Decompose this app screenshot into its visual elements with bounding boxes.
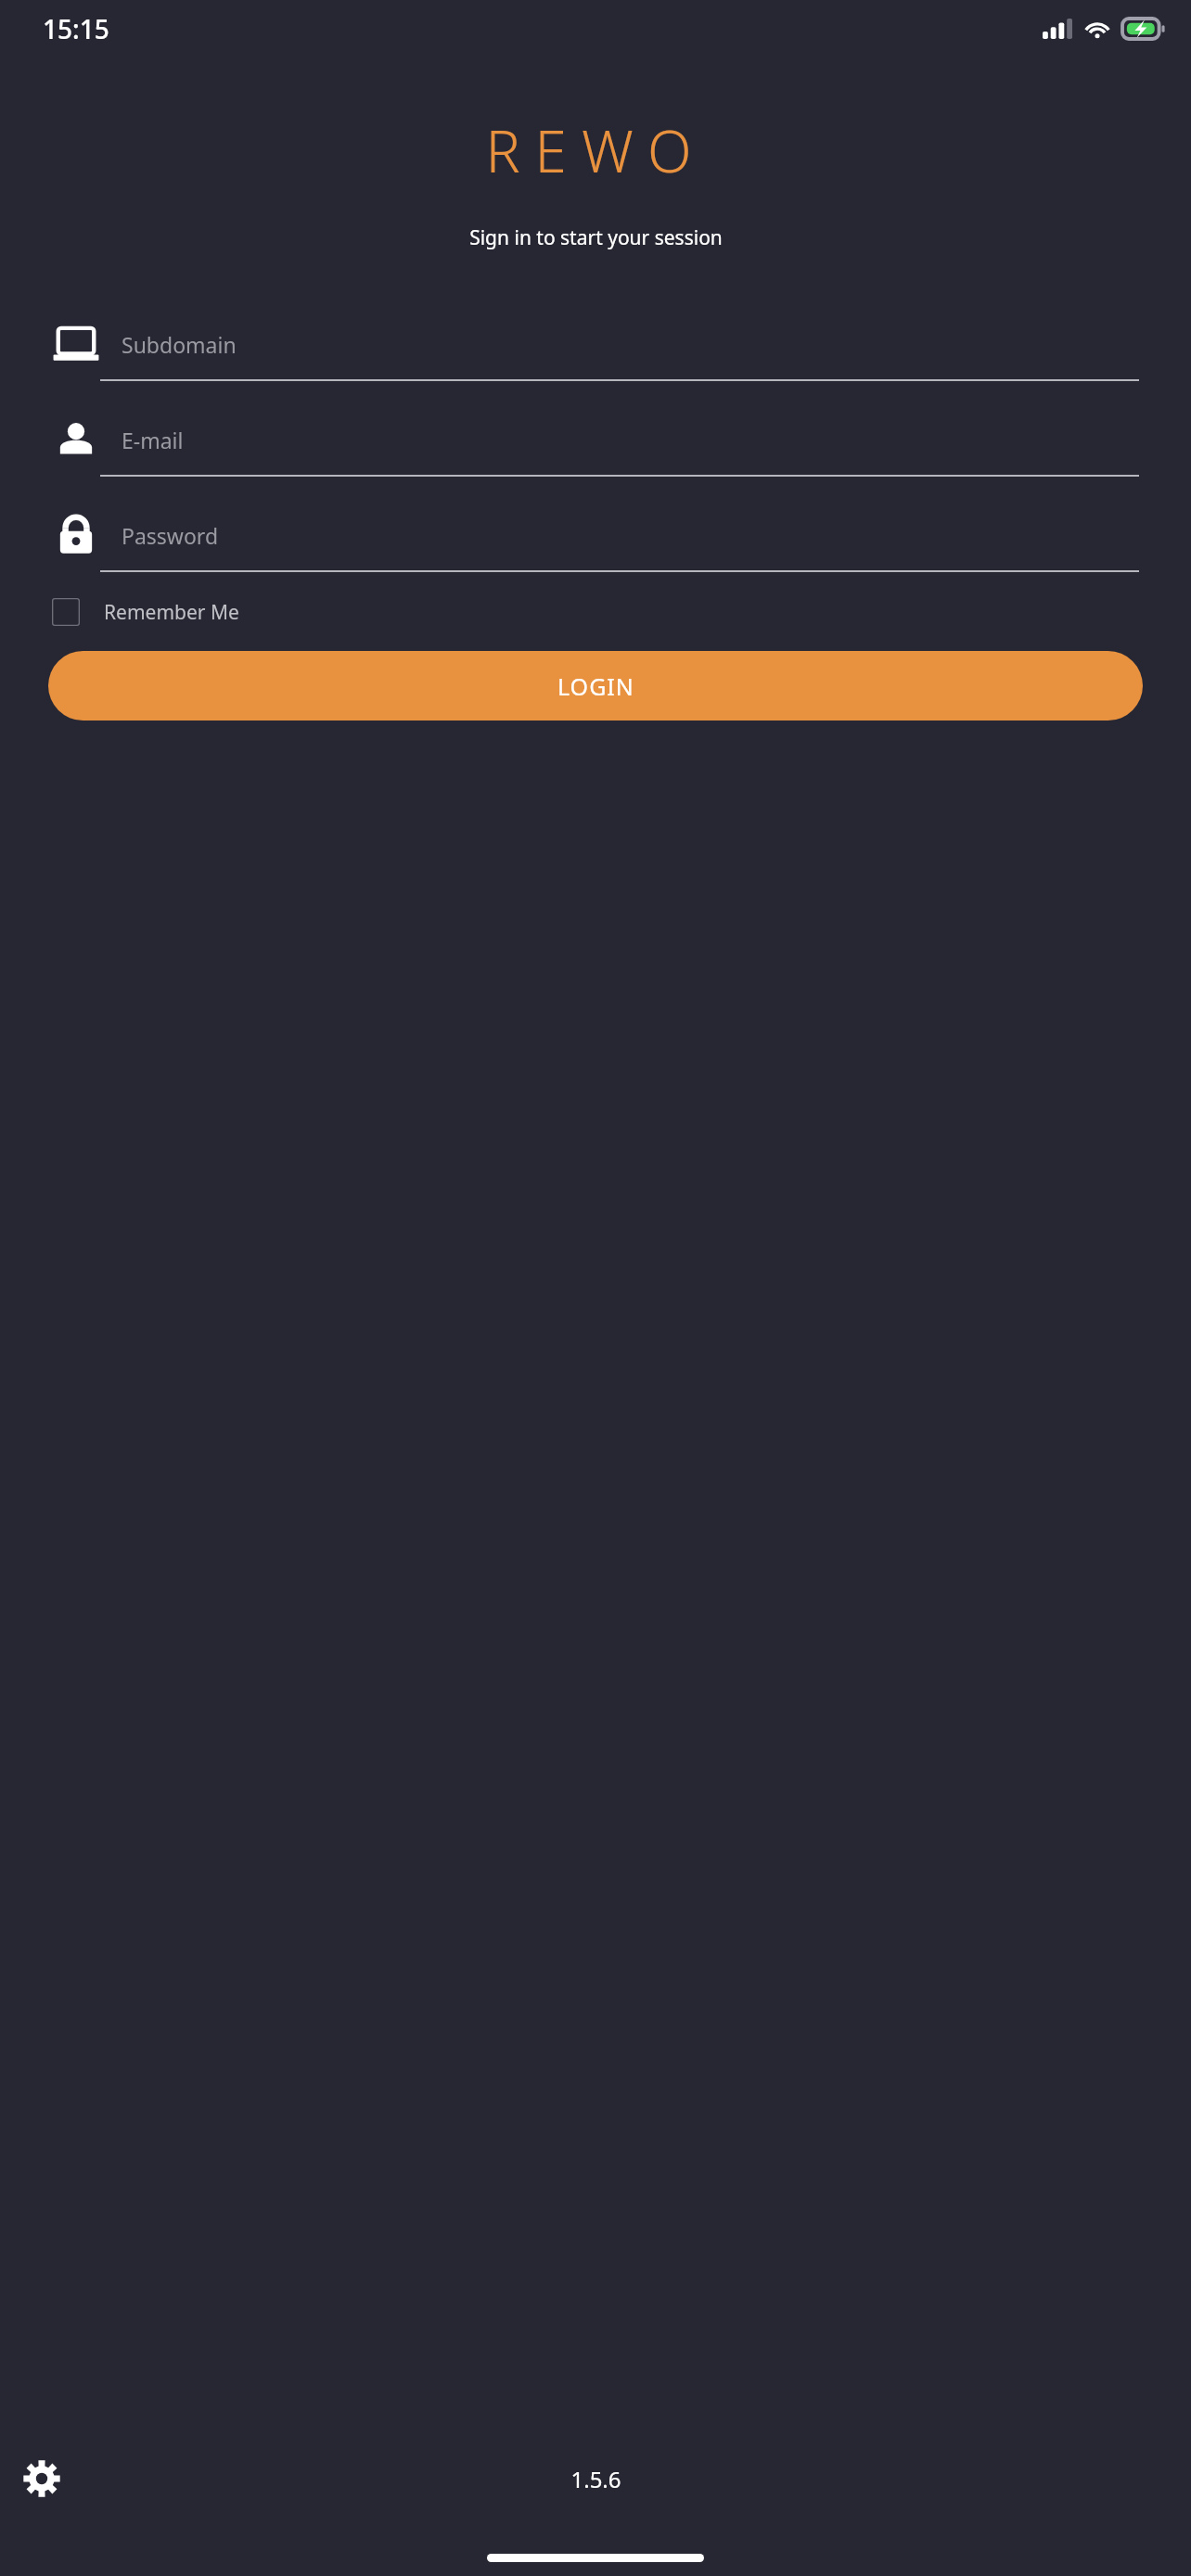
button[interactable]: Remember Me: [52, 593, 1139, 631]
staticText: REWO: [485, 111, 707, 189]
button[interactable]: E-mail: [52, 415, 1139, 477]
button[interactable]: LOGIN: [48, 651, 1143, 721]
staticText: 15:15: [43, 11, 109, 46]
staticText: LOGIN: [557, 670, 634, 702]
staticText: E-mail: [122, 426, 184, 454]
staticText: 1.5.6: [570, 2464, 621, 2494]
button[interactable]: Settings: [13, 2450, 70, 2507]
staticText: Sign in to start your session: [469, 224, 723, 251]
staticText: Remember Me: [104, 599, 239, 626]
button[interactable]: Subdomain: [52, 320, 1139, 381]
button[interactable]: Password: [52, 511, 1139, 572]
staticText: Password: [122, 521, 219, 550]
staticText: Subdomain: [122, 330, 237, 359]
